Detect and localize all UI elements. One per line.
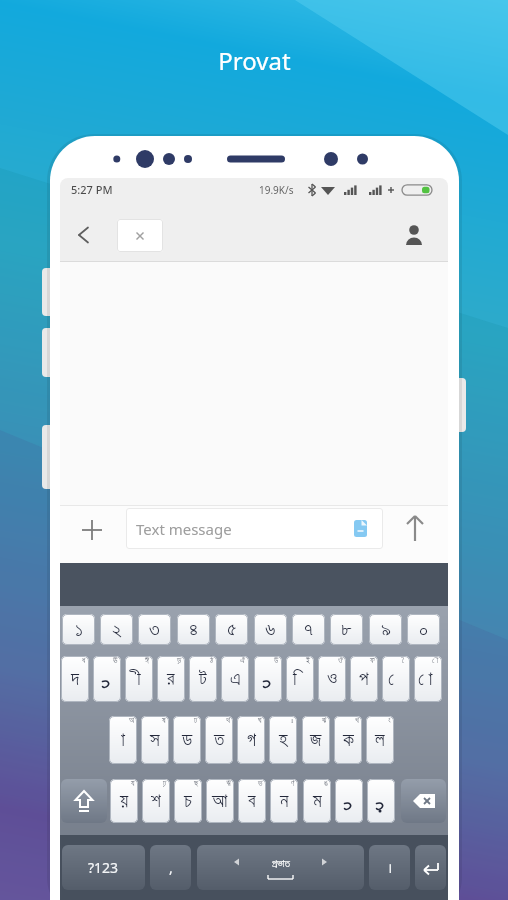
button[interactable]: জ: [302, 716, 330, 764]
button[interactable]: ৬: [254, 614, 287, 645]
staticText: য়: [120, 792, 129, 811]
button[interactable]: উ: [254, 656, 282, 702]
button[interactable]: ১: [62, 614, 95, 645]
button[interactable]: প: [350, 656, 378, 702]
staticText: দ: [71, 670, 79, 689]
staticText: ম: [313, 792, 322, 811]
button[interactable]: স: [141, 716, 169, 764]
staticText: ি: [293, 670, 302, 689]
button[interactable]: ৭: [292, 614, 325, 645]
button[interactable]: ।: [369, 845, 410, 890]
staticText: 5:27 PM: [71, 182, 113, 197]
button[interactable]: ল: [366, 716, 394, 764]
staticText: ঊ: [113, 657, 118, 665]
button[interactable]: া: [109, 716, 137, 764]
staticText: ঈ: [145, 657, 150, 665]
button[interactable]: চ: [174, 779, 202, 823]
staticText: ষ: [162, 717, 166, 725]
staticText: জ: [310, 731, 322, 750]
staticText: ৮: [341, 620, 352, 640]
staticText: গ: [247, 731, 256, 750]
button[interactable]: [401, 779, 446, 823]
button[interactable]: ,: [150, 845, 191, 890]
button[interactable]: ও: [318, 656, 346, 702]
staticText: ভ: [258, 780, 263, 788]
button[interactable]: ন: [270, 779, 298, 823]
button[interactable]: [415, 845, 446, 890]
button[interactable]: ৪: [177, 614, 210, 645]
staticText: স: [150, 731, 160, 750]
staticText: ণ: [291, 780, 295, 788]
staticText: ৬: [265, 620, 276, 640]
staticText: ং: [386, 717, 391, 725]
staticText: া: [116, 731, 125, 750]
staticText: ট: [199, 670, 207, 689]
button[interactable]: ৮: [330, 614, 363, 645]
staticText: ঐ: [240, 657, 246, 665]
staticText: ২: [112, 620, 122, 640]
staticText: ে: [388, 670, 399, 689]
staticText: থ: [226, 717, 230, 725]
button[interactable]: ম: [303, 779, 331, 823]
staticText: প: [359, 670, 369, 689]
button[interactable]: ত: [205, 716, 233, 764]
staticText: ন: [280, 792, 289, 811]
staticText: ত: [214, 731, 225, 750]
staticText: ড়: [177, 657, 182, 665]
staticText: প্রভাত: [272, 859, 290, 869]
button[interactable]: ি: [286, 656, 314, 702]
staticText: ঘ: [258, 717, 262, 725]
button[interactable]: ে: [382, 656, 410, 702]
button[interactable]: ৫: [215, 614, 248, 645]
button[interactable]: [117, 219, 163, 252]
button[interactable]: [70, 518, 114, 550]
staticText: ঢ়: [163, 780, 167, 788]
button[interactable]: ী: [125, 656, 153, 702]
button[interactable]: প্রভাত: [197, 845, 364, 890]
button[interactable]: [398, 218, 432, 252]
staticText: র: [167, 670, 175, 689]
button[interactable]: ো: [414, 656, 442, 702]
staticText: ।: [387, 858, 393, 877]
staticText: ব: [248, 792, 256, 811]
button[interactable]: ট: [189, 656, 217, 702]
staticText: ৪: [189, 620, 198, 640]
staticText: অ: [129, 717, 134, 725]
staticText: ৩: [149, 620, 160, 640]
button[interactable]: য়: [110, 779, 138, 823]
staticText: চ: [184, 792, 192, 811]
staticText: 19.9K/s: [259, 183, 294, 197]
button[interactable]: আ: [206, 779, 234, 823]
staticText: শ: [151, 792, 161, 811]
button[interactable]: [335, 779, 363, 823]
button[interactable]: ৩: [138, 614, 171, 645]
staticText: এ: [230, 670, 241, 689]
button[interactable]: ৯: [369, 614, 402, 645]
staticText: ল: [375, 731, 385, 750]
button[interactable]: [399, 512, 435, 546]
staticText: ৯: [381, 620, 391, 640]
button[interactable]: ঊ: [93, 656, 121, 702]
button[interactable]: [367, 779, 395, 823]
staticText: ৈ: [402, 657, 407, 665]
staticText: ঙ: [324, 780, 328, 788]
button[interactable]: দ: [61, 656, 89, 702]
staticText: আ: [212, 792, 228, 811]
button[interactable]: এ: [221, 656, 249, 702]
button[interactable]: ২: [100, 614, 133, 645]
button[interactable]: শ: [142, 779, 170, 823]
staticText: ,: [169, 858, 173, 877]
button[interactable]: র: [157, 656, 185, 702]
staticText: ফ: [370, 657, 375, 665]
button[interactable]: হ: [269, 716, 297, 764]
button[interactable]: [61, 779, 107, 823]
staticText: Provat: [218, 44, 291, 77]
button[interactable]: ড: [173, 716, 201, 764]
button[interactable]: ক: [334, 716, 362, 764]
button[interactable]: Text message: [126, 508, 383, 549]
button[interactable]: ০: [407, 614, 440, 645]
button[interactable]: গ: [237, 716, 265, 764]
button[interactable]: ?123: [62, 845, 145, 890]
button[interactable]: [68, 218, 100, 250]
button[interactable]: ব: [238, 779, 266, 823]
